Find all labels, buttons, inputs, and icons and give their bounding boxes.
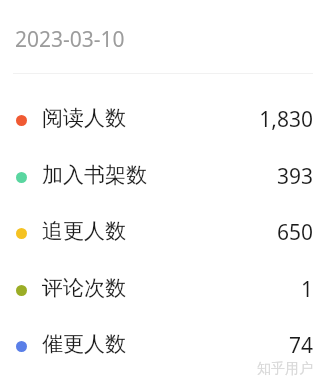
staticText: 阅读人数: [42, 105, 126, 131]
button[interactable]: 2023-03-10: [15, 25, 215, 55]
button[interactable]: 加入书架数: [0, 157, 330, 197]
staticText: 1,830: [173, 105, 313, 135]
button[interactable]: 阅读人数: [0, 100, 330, 140]
staticText: 650: [173, 218, 313, 248]
button[interactable]: 追更人数: [0, 213, 330, 253]
button[interactable]: 催更人数: [0, 326, 330, 366]
staticText: 加入书架数: [42, 162, 147, 188]
staticText: 1: [173, 275, 313, 305]
staticText: 催更人数: [42, 331, 126, 357]
staticText: 知乎用户: [233, 360, 313, 382]
button[interactable]: 评论次数: [0, 270, 330, 310]
staticText: 2023-03-10: [15, 25, 125, 54]
staticText: 74: [173, 331, 313, 361]
staticText: 评论次数: [42, 275, 126, 301]
staticText: 393: [173, 162, 313, 192]
staticText: 追更人数: [42, 218, 126, 244]
